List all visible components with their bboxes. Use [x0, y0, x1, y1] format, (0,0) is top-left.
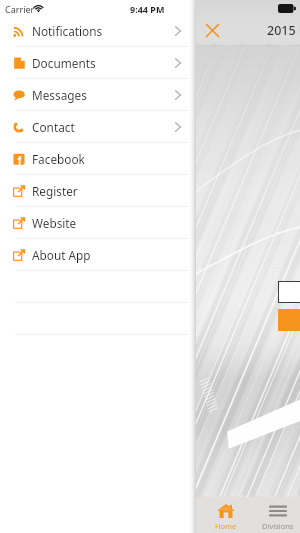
staticText: Messages	[32, 87, 87, 103]
button[interactable]: About App	[0, 239, 188, 271]
button[interactable]: Close menu	[199, 17, 225, 43]
staticText: Notifications	[32, 23, 103, 39]
button[interactable]: Documents	[0, 47, 188, 79]
button[interactable]: Home	[196, 497, 256, 533]
button[interactable]: Website	[0, 207, 188, 239]
button[interactable]: Notifications	[0, 15, 188, 47]
staticText: 2015 Fes	[267, 22, 300, 39]
button[interactable]: Contact	[0, 111, 188, 143]
staticText: Carrier	[5, 3, 35, 15]
staticText: Website	[32, 215, 77, 231]
staticText: Divisions	[262, 521, 294, 531]
staticText: Register	[32, 183, 78, 199]
button[interactable]: Divisions	[256, 497, 300, 533]
button[interactable]: Register	[0, 175, 188, 207]
staticText: 9:44 PM	[130, 3, 165, 15]
button[interactable]: Facebook	[0, 143, 188, 175]
staticText: Home	[215, 521, 237, 531]
staticText: About App	[32, 247, 91, 263]
button[interactable]: Messages	[0, 79, 188, 111]
staticText: Facebook	[32, 151, 85, 167]
staticText: Contact	[32, 119, 75, 135]
staticText: Documents	[32, 55, 96, 71]
